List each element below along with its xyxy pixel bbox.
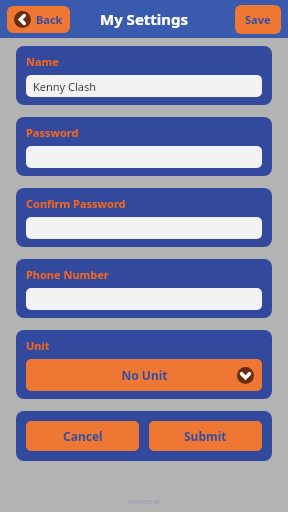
button[interactable]: Name <box>16 46 272 105</box>
staticText: Confirm Password <box>26 196 126 211</box>
staticText: Save <box>245 12 271 27</box>
staticText: Phone Number <box>26 267 109 282</box>
staticText: POWERED BY <box>128 499 161 506</box>
button[interactable]: Cancel <box>26 421 139 451</box>
button[interactable]: Save <box>235 5 281 34</box>
staticText: Name <box>26 54 59 69</box>
button[interactable]: Unit <box>16 330 272 399</box>
button[interactable]: Kenny Clash <box>26 75 262 97</box>
staticText: Unit <box>26 338 50 353</box>
button[interactable] <box>26 217 262 239</box>
button[interactable]: Phone Number <box>16 259 272 318</box>
button[interactable]: Password <box>16 117 272 176</box>
staticText: No Unit <box>121 367 168 383</box>
button[interactable]: Submit <box>149 421 262 451</box>
other: Open unit dropdown <box>237 367 254 384</box>
staticText: My Settings <box>100 9 189 29</box>
staticText: Back <box>36 12 63 27</box>
button[interactable]: No Unit <box>26 359 262 391</box>
button[interactable]: Back <box>7 6 70 33</box>
button[interactable] <box>26 146 262 168</box>
button[interactable] <box>26 288 262 310</box>
staticText: Password <box>26 125 79 140</box>
staticText: Cancel <box>63 428 103 444</box>
button[interactable]: Confirm Password <box>16 188 272 247</box>
staticText: Submit <box>184 428 227 444</box>
staticText: Kenny Clash <box>33 79 97 94</box>
